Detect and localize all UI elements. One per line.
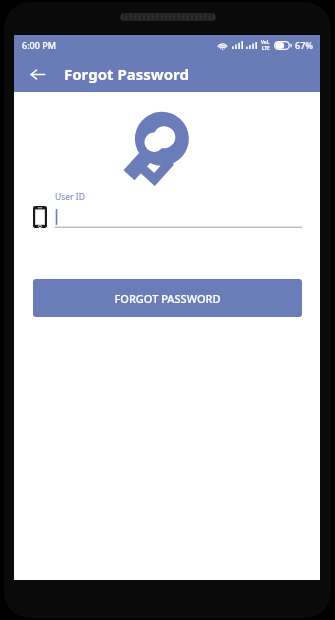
button[interactable]: Back [20, 57, 54, 91]
staticText: 67% [295, 39, 313, 51]
staticText: LTE [262, 45, 270, 51]
staticText: 6:00 PM [22, 39, 56, 51]
button[interactable] [55, 206, 302, 228]
button[interactable]: FORGOT PASSWORD [33, 279, 302, 317]
staticText: FORGOT PASSWORD [114, 291, 221, 306]
staticText: User ID [55, 191, 85, 203]
staticText: VoL [261, 39, 270, 45]
staticText: Forgot Password [64, 64, 189, 84]
